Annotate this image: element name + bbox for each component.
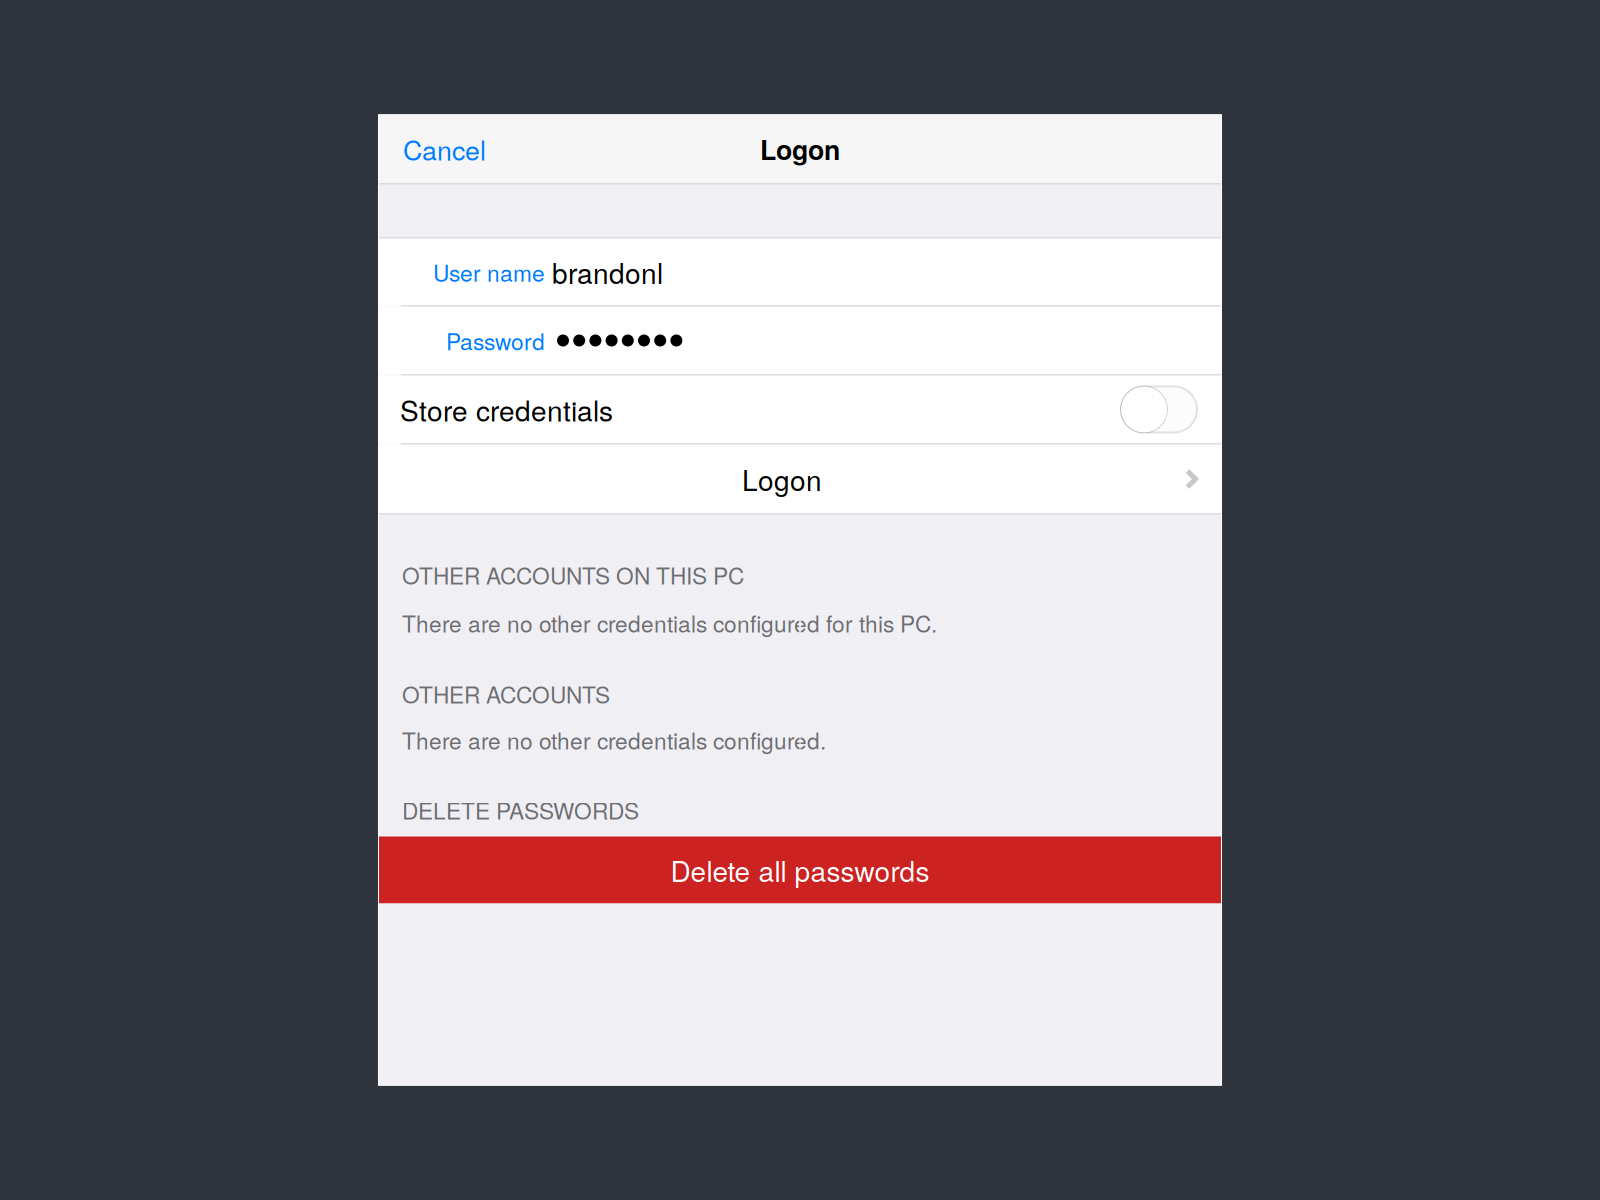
staticText: OTHER ACCOUNTS ON THIS PC [402, 558, 744, 591]
staticText: Logon [742, 459, 822, 499]
staticText: Cancel [403, 130, 486, 168]
button[interactable]: Store credentials [378, 375, 1222, 443]
staticText: There are no other credentials configure… [402, 606, 937, 639]
staticText: Delete all passwords [670, 850, 929, 890]
staticText: OTHER ACCOUNTS [402, 677, 610, 710]
button[interactable]: Logon [378, 444, 1222, 513]
button[interactable]: Cancel [378, 114, 502, 183]
staticText: Password [446, 324, 545, 357]
staticText: There are no other credentials configure… [402, 723, 826, 756]
staticText: User name [433, 256, 545, 288]
staticText: Logon [760, 130, 840, 168]
staticText: DELETE PASSWORDS [402, 793, 639, 826]
staticText: brandonl [552, 252, 663, 292]
staticText: Store credentials [400, 389, 613, 430]
button[interactable]: Delete all passwords [378, 836, 1222, 903]
